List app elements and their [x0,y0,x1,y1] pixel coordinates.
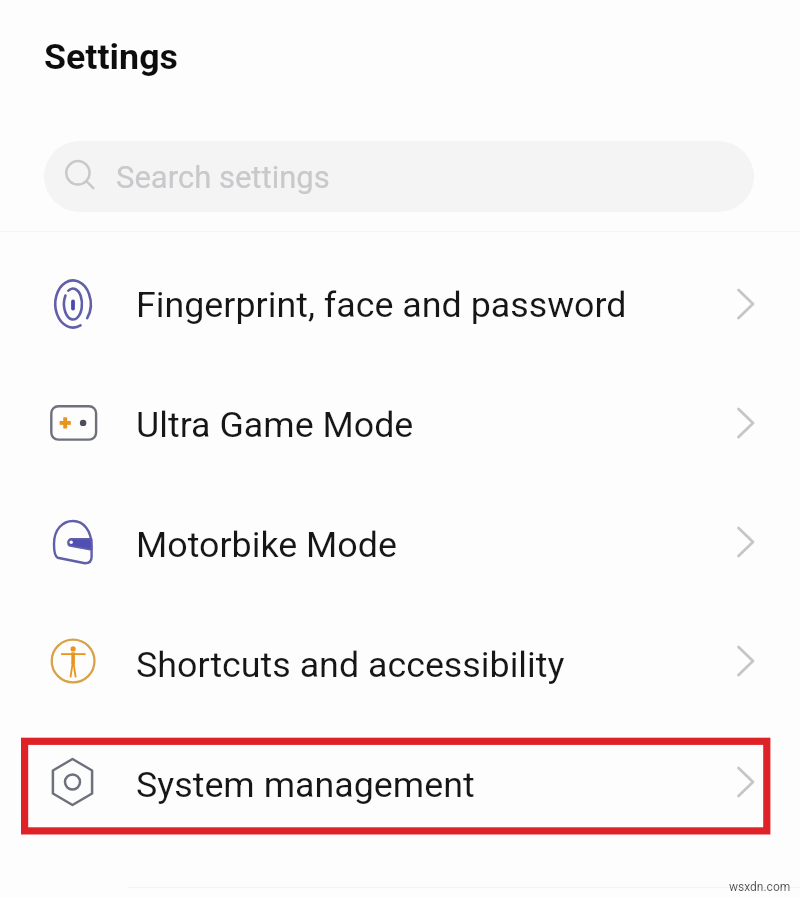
button[interactable]: Search settings [44,141,754,212]
button[interactable]: Shortcuts and accessibility [0,591,800,711]
staticText: Shortcuts and accessibility [136,644,565,686]
staticText: System management [136,764,475,806]
staticText: Settings [44,36,178,78]
staticText: wsxdn.com [729,880,791,894]
button[interactable]: Ultra Game Mode [0,351,800,471]
other: Open Fingerprint, face and password [728,288,760,320]
staticText: Fingerprint, face and password [136,284,627,326]
other: Open Shortcuts and accessibility [728,645,760,677]
staticText: Search settings [116,159,330,195]
other: Open Motorbike Mode [728,526,760,558]
other: Open Ultra Game Mode [728,407,760,439]
button[interactable]: System management [0,711,800,831]
staticText: Motorbike Mode [136,524,397,566]
staticText: Ultra Game Mode [136,404,414,446]
other: Open System management [728,766,760,798]
button[interactable]: Motorbike Mode [0,471,800,591]
button[interactable]: Fingerprint, face and password [0,231,800,351]
